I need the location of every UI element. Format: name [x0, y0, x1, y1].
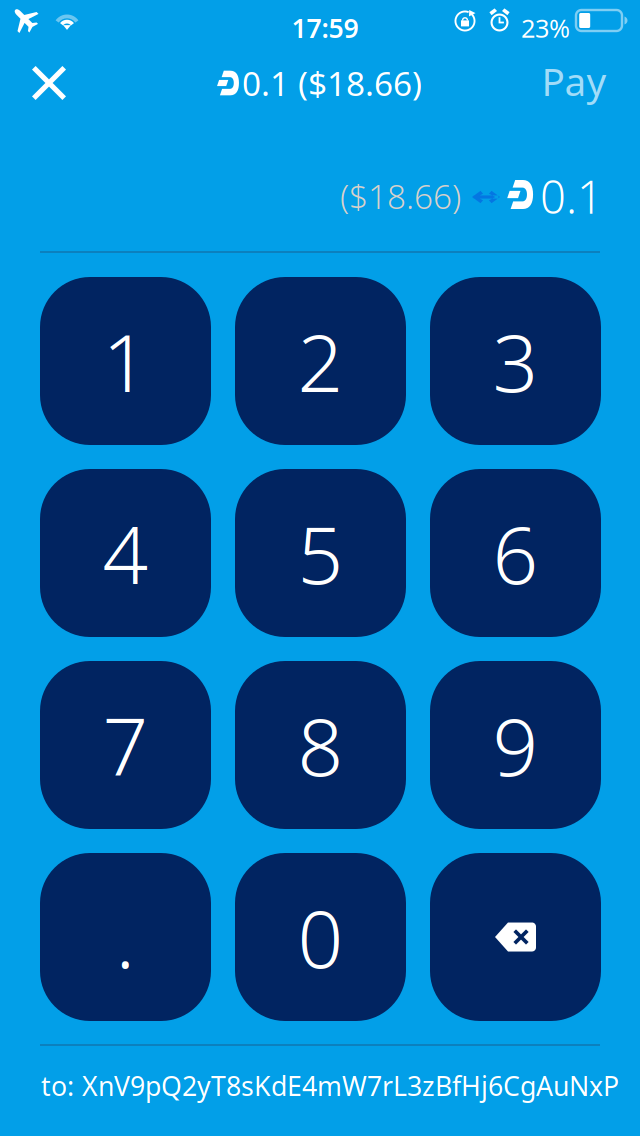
staticText: 0.1: [540, 166, 603, 226]
button[interactable]: 4: [40, 469, 211, 637]
staticText: 3: [492, 308, 538, 414]
staticText: 23%: [521, 11, 570, 45]
button[interactable]: Close: [10, 44, 88, 122]
button[interactable]: 1: [40, 277, 211, 445]
button[interactable]: 7: [40, 661, 211, 829]
button[interactable]: 8: [235, 661, 406, 829]
button[interactable]: 0: [235, 853, 406, 1021]
staticText: Pay: [541, 55, 606, 107]
staticText: 9: [492, 692, 538, 798]
button[interactable]: 9: [430, 661, 601, 829]
staticText: 1: [102, 308, 148, 414]
staticText: 0.1 ($18.66): [242, 61, 422, 105]
staticText: 17:59: [291, 10, 358, 45]
staticText: to:: [41, 1068, 74, 1103]
staticText: 8: [297, 692, 343, 798]
button[interactable]: 2: [235, 277, 406, 445]
staticText: 0: [297, 884, 343, 990]
button[interactable]: Pay: [524, 47, 624, 115]
button[interactable]: .: [40, 853, 211, 1021]
staticText: 6: [492, 500, 538, 606]
staticText: XnV9pQ2yT8sKdE4mW7rL3zBfHj6CgAuNxP: [82, 1068, 619, 1103]
staticText: .: [115, 884, 135, 990]
staticText: 7: [102, 692, 148, 798]
staticText: ($18.66): [340, 174, 461, 218]
button[interactable]: Delete: [430, 853, 601, 1021]
staticText: 5: [297, 500, 343, 606]
button[interactable]: 3: [430, 277, 601, 445]
staticText: 2: [297, 308, 343, 414]
button[interactable]: 6: [430, 469, 601, 637]
staticText: 4: [102, 500, 148, 606]
button[interactable]: 5: [235, 469, 406, 637]
